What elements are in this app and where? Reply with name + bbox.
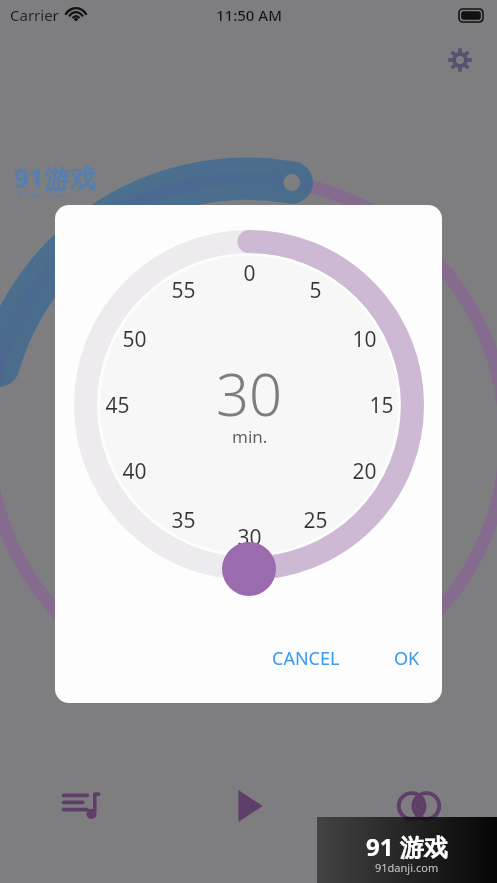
staticText: Carrier bbox=[10, 5, 59, 25]
button[interactable]: Play bbox=[217, 774, 281, 838]
staticText: 25 bbox=[303, 506, 328, 535]
button[interactable]: Crossfade bbox=[387, 774, 451, 838]
staticText: CANCEL bbox=[272, 646, 340, 671]
staticText: 11:50 AM bbox=[216, 5, 282, 25]
staticText: 45 bbox=[105, 391, 130, 420]
staticText: 55 bbox=[171, 276, 196, 305]
staticText: OK bbox=[394, 646, 420, 671]
staticText: 20 bbox=[352, 457, 377, 486]
button[interactable]: Settings bbox=[437, 37, 483, 83]
staticText: 50 bbox=[122, 325, 147, 354]
staticText: 15 bbox=[369, 391, 394, 420]
staticText: 35 bbox=[171, 506, 196, 535]
staticText: 91danji.com bbox=[18, 188, 70, 200]
staticText: 10 bbox=[352, 325, 377, 354]
staticText: 40 bbox=[122, 457, 147, 486]
button[interactable]: CANCEL bbox=[258, 636, 354, 681]
button[interactable]: Playlist bbox=[50, 774, 114, 838]
staticText: 30 bbox=[237, 523, 262, 552]
staticText: 0 bbox=[243, 259, 256, 288]
staticText: min. bbox=[232, 425, 268, 448]
staticText: 91danji.com bbox=[375, 860, 439, 875]
button[interactable]: Minutes handle bbox=[222, 542, 276, 596]
staticText: 30 bbox=[216, 354, 283, 433]
button[interactable]: OK bbox=[380, 636, 434, 681]
staticText: 91游戏 bbox=[14, 160, 96, 196]
staticText: 5 bbox=[309, 276, 322, 305]
staticText: 91 游戏 bbox=[366, 830, 448, 863]
